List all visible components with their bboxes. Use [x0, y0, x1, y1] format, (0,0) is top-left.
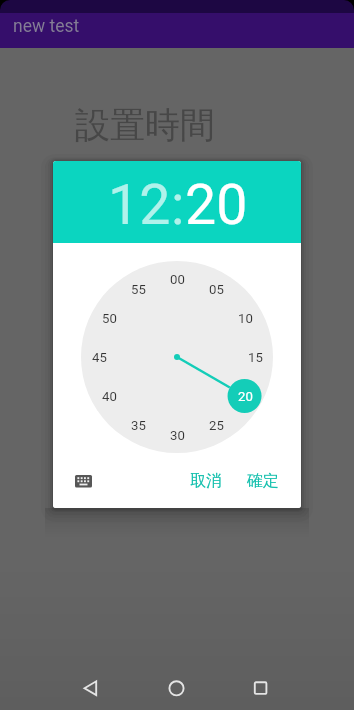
staticText: 20 — [238, 389, 253, 404]
staticText: 50 — [102, 311, 117, 326]
button[interactable]: 20 — [185, 173, 248, 238]
button[interactable] — [237, 664, 285, 710]
staticText: 30 — [170, 428, 185, 443]
staticText: 15 — [248, 350, 263, 365]
staticText: 05 — [209, 282, 224, 297]
staticText: 取消 — [190, 471, 222, 491]
staticText: 55 — [131, 282, 146, 297]
staticText: new test — [13, 16, 80, 37]
staticText: 12 — [108, 173, 171, 238]
button[interactable]: 12 — [108, 173, 171, 238]
staticText: 確定 — [247, 471, 279, 491]
staticText: 20 — [185, 173, 248, 238]
staticText: : — [171, 173, 185, 238]
button[interactable] — [75, 475, 93, 488]
staticText: 25 — [209, 418, 224, 433]
staticText: 00 — [170, 272, 185, 287]
staticText: 設置時間 — [75, 103, 215, 147]
button[interactable]: 確定 — [239, 466, 287, 496]
staticText: 45 — [92, 350, 107, 365]
staticText: 35 — [131, 418, 146, 433]
button[interactable]: new test — [0, 13, 354, 48]
staticText: 40 — [102, 389, 117, 404]
button[interactable] — [153, 664, 201, 710]
button[interactable]: 取消 — [182, 466, 230, 496]
button[interactable] — [66, 664, 114, 710]
staticText: 10 — [238, 311, 253, 326]
